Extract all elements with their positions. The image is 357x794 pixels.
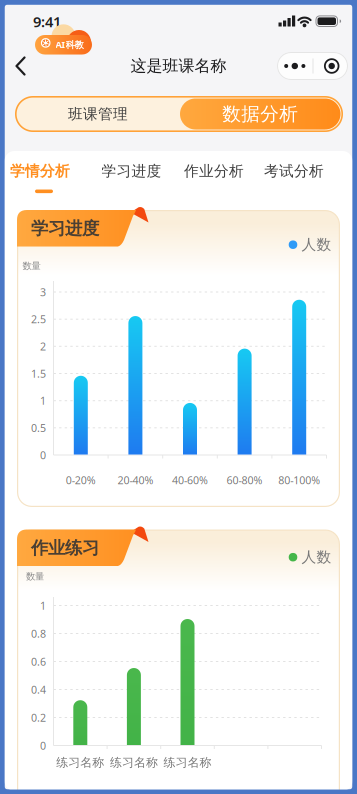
staticText: 60-80% xyxy=(227,473,263,487)
staticText: 练习名称 xyxy=(56,755,104,770)
staticText: 2.5 xyxy=(31,312,46,326)
staticText: 数量 xyxy=(22,260,40,272)
button[interactable]: 数据分析 xyxy=(180,98,340,129)
button[interactable]: 班课管理 xyxy=(18,96,178,132)
staticText: AI科教 xyxy=(55,38,83,51)
button[interactable]: 作业分析 xyxy=(184,162,244,180)
staticText: 40-60% xyxy=(172,473,208,487)
staticText: 1.5 xyxy=(31,366,46,381)
button[interactable]: 考试分析 xyxy=(264,162,324,180)
staticText: 0.2 xyxy=(31,710,46,725)
staticText: 练习名称 xyxy=(163,755,211,770)
staticText: 考试分析 xyxy=(264,162,324,180)
staticText: 0.4 xyxy=(31,682,46,697)
staticText: 9:41 xyxy=(33,12,61,31)
staticText: 1 xyxy=(40,598,46,613)
button[interactable]: Back xyxy=(12,54,36,78)
staticText: 这是班课名称 xyxy=(130,56,226,76)
staticText: 人数 xyxy=(302,548,332,566)
staticText: 0-20% xyxy=(66,473,96,487)
button[interactable]: More xyxy=(278,52,312,80)
staticText: 数据分析 xyxy=(222,102,298,125)
staticText: 20-40% xyxy=(117,473,153,487)
staticText: 学习进度 xyxy=(31,218,99,239)
staticText: 学习进度 xyxy=(101,162,161,180)
staticText: 0 xyxy=(40,448,46,462)
button[interactable]: Close xyxy=(315,52,349,80)
staticText: 2 xyxy=(40,339,46,353)
staticText: 练习名称 xyxy=(110,755,158,770)
staticText: 作业分析 xyxy=(184,162,244,180)
staticText: 1 xyxy=(40,394,46,408)
button[interactable]: 学习进度 xyxy=(101,162,161,180)
staticText: 3 xyxy=(40,285,46,299)
staticText: 数量 xyxy=(26,571,44,582)
staticText: 80-100% xyxy=(278,473,320,487)
staticText: 0.6 xyxy=(31,654,46,669)
staticText: 人数 xyxy=(302,236,332,254)
staticText: 作业练习 xyxy=(31,537,99,559)
staticText: 0 xyxy=(40,738,46,753)
staticText: 0.5 xyxy=(31,421,46,435)
button[interactable]: 学情分析 xyxy=(10,162,70,180)
staticText: 班课管理 xyxy=(68,105,128,123)
staticText: 0.8 xyxy=(31,626,46,641)
staticText: 学情分析 xyxy=(10,162,70,180)
